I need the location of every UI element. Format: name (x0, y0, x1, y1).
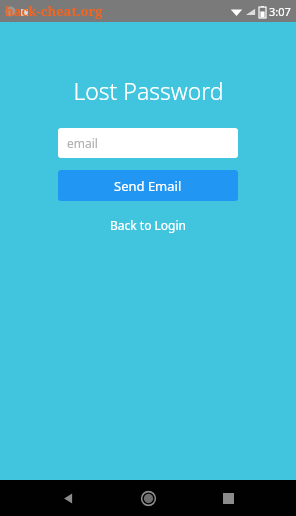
button[interactable]: Recent apps (212, 482, 244, 514)
staticText: email (67, 135, 98, 151)
staticText: Send Email (114, 177, 182, 195)
staticText: Lost Password (73, 75, 224, 106)
staticText: Back to Login (110, 217, 186, 233)
button[interactable]: email (58, 128, 238, 158)
button[interactable]: Home (132, 482, 164, 514)
button[interactable]: Send Email (58, 170, 238, 201)
staticText: 3:07 (269, 4, 291, 19)
button[interactable]: Back (52, 482, 84, 514)
staticText: hack-cheat.org (5, 2, 103, 20)
button[interactable]: Back to Login (100, 212, 196, 238)
